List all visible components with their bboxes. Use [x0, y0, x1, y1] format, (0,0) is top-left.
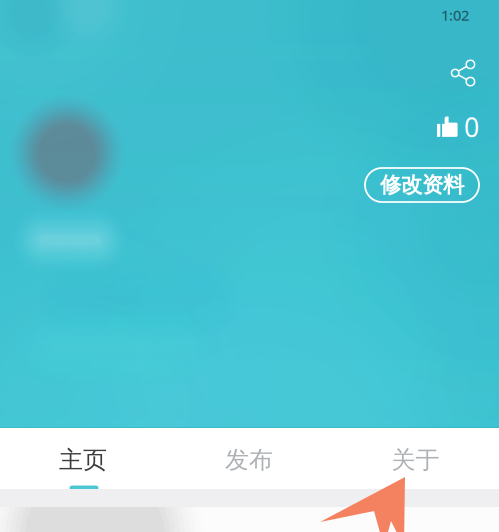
staticText: 1:02	[441, 5, 469, 25]
staticText: 主页	[59, 445, 107, 475]
button[interactable]: 主页	[0, 428, 166, 489]
button[interactable]: Share	[441, 51, 485, 95]
staticText: 修改资料	[380, 172, 464, 198]
button[interactable]: 修改资料	[365, 168, 479, 202]
staticText: 关于	[391, 445, 439, 475]
button[interactable]: 发布	[166, 428, 332, 489]
button[interactable]: Like	[430, 110, 486, 144]
staticText: 发布	[225, 445, 273, 475]
button[interactable]: 关于	[332, 428, 499, 489]
staticText: 0	[464, 109, 479, 145]
